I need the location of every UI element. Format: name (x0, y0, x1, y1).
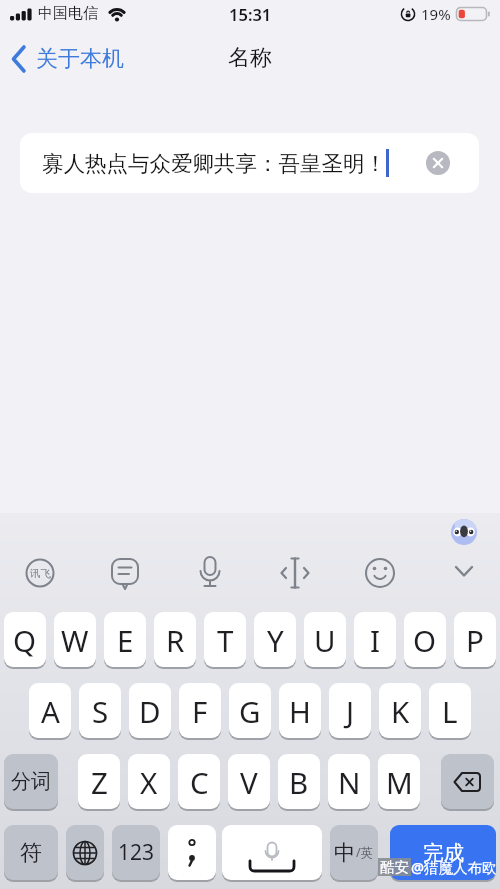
button[interactable]: G (229, 683, 271, 738)
button[interactable]: P (454, 612, 496, 667)
staticText: B (289, 762, 309, 802)
staticText: U (314, 620, 336, 660)
staticText: L (442, 691, 458, 731)
button[interactable]: K (379, 683, 421, 738)
button[interactable]: 中 (330, 825, 378, 880)
staticText: Y (267, 620, 284, 660)
staticText: T (217, 620, 234, 660)
staticText: 19% (421, 4, 451, 24)
button[interactable]: R (154, 612, 196, 667)
staticText: Z (91, 762, 108, 802)
button[interactable]: V (228, 754, 270, 809)
button[interactable]: L (429, 683, 471, 738)
button[interactable]: 寡人热点与众爱卿共享：吾皇圣明！ (20, 133, 479, 193)
staticText: C (190, 762, 209, 802)
button[interactable]: I (354, 612, 396, 667)
staticText: 123 (118, 838, 155, 867)
button[interactable] (426, 151, 450, 175)
staticText: R (166, 620, 185, 660)
button[interactable] (66, 825, 104, 880)
staticText: F (192, 691, 208, 731)
staticText: H (289, 691, 311, 731)
staticText: E (117, 620, 134, 660)
button[interactable] (188, 551, 232, 595)
button[interactable]: N (328, 754, 370, 809)
staticText: N (338, 762, 361, 802)
button[interactable]: B (278, 754, 320, 809)
button[interactable] (222, 825, 322, 880)
staticText: A (41, 691, 60, 731)
button[interactable] (441, 754, 494, 809)
button[interactable] (442, 551, 486, 595)
button[interactable]: H (279, 683, 321, 738)
button[interactable]: C (178, 754, 220, 809)
staticText: 名称 (228, 44, 272, 72)
staticText: /英 (356, 844, 374, 861)
button[interactable]: 符 (4, 825, 58, 880)
staticText: P (466, 620, 484, 660)
staticText: Q (13, 620, 37, 660)
button[interactable] (273, 551, 317, 595)
staticText: W (61, 620, 89, 660)
button[interactable]: U (304, 612, 346, 667)
button[interactable]: F (179, 683, 221, 738)
button[interactable]: Q (4, 612, 46, 667)
button[interactable]: E (104, 612, 146, 667)
staticText: 分词 (11, 769, 51, 794)
staticText: J (346, 691, 355, 731)
button[interactable] (103, 551, 147, 595)
button[interactable]: X (128, 754, 170, 809)
staticText: 中 (334, 839, 356, 866)
staticText: K (391, 691, 410, 731)
staticText: 讯飞 (30, 567, 51, 580)
staticText: S (92, 691, 109, 731)
staticText: M (386, 762, 413, 802)
button[interactable]: J (329, 683, 371, 738)
staticText: D (139, 691, 161, 731)
staticText: G (239, 691, 261, 731)
button[interactable]: A (29, 683, 71, 738)
button[interactable]: 完成 (390, 825, 496, 880)
button[interactable] (168, 825, 216, 880)
staticText: @猎魔人布欧 (411, 857, 497, 877)
staticText: 符 (20, 839, 42, 867)
button[interactable]: D (129, 683, 171, 738)
staticText: V (240, 762, 258, 802)
button[interactable]: T (204, 612, 246, 667)
button[interactable] (358, 551, 402, 595)
button[interactable]: 123 (112, 825, 160, 880)
button[interactable]: Z (78, 754, 120, 809)
button[interactable]: M (378, 754, 420, 809)
staticText: 完成 (423, 840, 464, 866)
button[interactable]: Y (254, 612, 296, 667)
staticText: O (413, 620, 437, 660)
button[interactable]: S (79, 683, 121, 738)
button[interactable]: 讯飞 (18, 551, 62, 595)
button[interactable]: 关于本机 (6, 41, 124, 77)
button[interactable]: W (54, 612, 96, 667)
staticText: 15:31 (229, 3, 272, 25)
button[interactable]: O (404, 612, 446, 667)
button[interactable]: 分词 (4, 754, 58, 809)
staticText: 寡人热点与众爱卿共享：吾皇圣明！ (42, 150, 386, 177)
staticText: I (370, 620, 381, 660)
staticText: 关于本机 (36, 45, 124, 73)
staticText: X (140, 762, 158, 802)
staticText: 中国电信 (38, 4, 98, 23)
staticText: 酷安 (380, 858, 409, 876)
